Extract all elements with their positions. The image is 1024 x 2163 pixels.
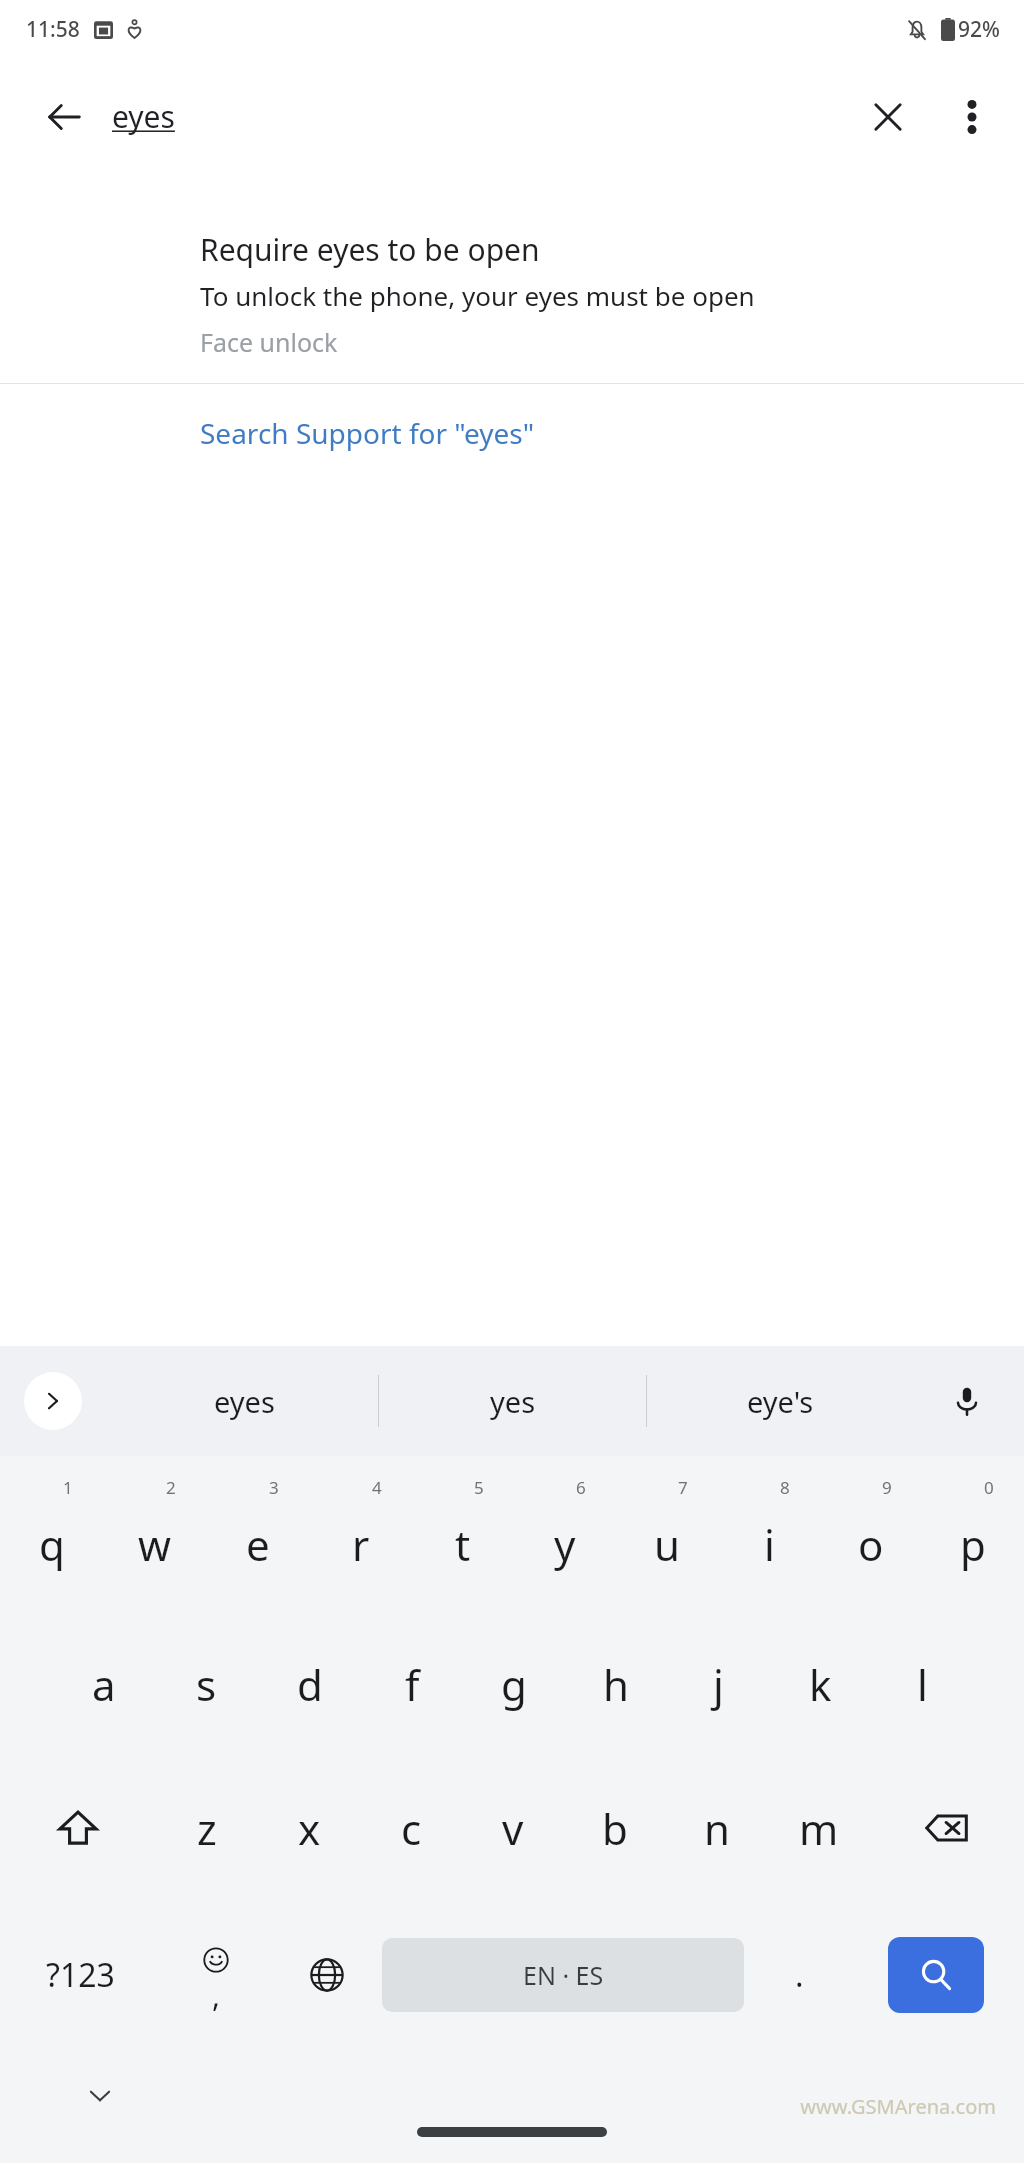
staticText: d xyxy=(297,1656,323,1713)
staticText: o xyxy=(858,1516,884,1573)
staticText: p xyxy=(960,1516,986,1573)
staticText: 92% xyxy=(958,15,1000,44)
staticText: 8 xyxy=(780,1476,790,1499)
staticText: m xyxy=(799,1800,839,1857)
button[interactable]: eyes xyxy=(110,1346,378,1456)
button[interactable]: yes xyxy=(379,1346,646,1456)
button[interactable]: 7 xyxy=(616,1468,718,1612)
staticText: 9 xyxy=(882,1476,892,1499)
staticText: c xyxy=(401,1800,422,1857)
button[interactable]: ?123 xyxy=(0,1900,160,2050)
staticText: e xyxy=(246,1516,270,1573)
staticText: To unlock the phone, your eyes must be o… xyxy=(200,278,755,313)
staticText: s xyxy=(196,1656,217,1713)
staticText: z xyxy=(197,1800,217,1857)
button[interactable]: eye's xyxy=(647,1346,914,1456)
button[interactable]: k xyxy=(769,1612,871,1756)
button[interactable]: x xyxy=(258,1756,360,1900)
staticText: j xyxy=(713,1656,724,1713)
button[interactable]: h xyxy=(565,1612,667,1756)
staticText: g xyxy=(501,1656,527,1713)
staticText: , xyxy=(212,1975,221,2016)
staticText: Search Support for "eyes" xyxy=(200,414,535,452)
button[interactable]: 3 xyxy=(206,1468,309,1612)
button[interactable]: Hide keyboard xyxy=(78,2074,122,2118)
staticText: n xyxy=(704,1800,730,1857)
staticText: 1 xyxy=(63,1476,73,1499)
staticText: 4 xyxy=(372,1476,382,1499)
button[interactable]: b xyxy=(564,1756,666,1900)
staticText: i xyxy=(764,1516,775,1573)
staticText: Require eyes to be open xyxy=(200,229,540,270)
button[interactable]: j xyxy=(667,1612,769,1756)
button[interactable]: n xyxy=(666,1756,768,1900)
staticText: x xyxy=(298,1800,321,1857)
staticText: 5 xyxy=(474,1476,484,1499)
staticText: y xyxy=(554,1516,576,1573)
staticText: 7 xyxy=(678,1476,688,1499)
button[interactable]: c xyxy=(360,1756,462,1900)
button[interactable]: Shift xyxy=(0,1756,155,1900)
button[interactable]: EN · ES xyxy=(382,1938,744,2012)
staticText: . xyxy=(795,1953,804,1997)
button[interactable]: g xyxy=(463,1612,565,1756)
staticText: www.GSMArena.com xyxy=(800,2093,996,2120)
button[interactable]: More options xyxy=(936,69,1008,165)
staticText: a xyxy=(92,1656,116,1713)
staticText: yes xyxy=(490,1382,536,1421)
staticText: 0 xyxy=(984,1476,994,1499)
button[interactable]: Voice input xyxy=(932,1366,1002,1436)
button[interactable]: 2 xyxy=(103,1468,206,1612)
staticText: w xyxy=(138,1516,172,1573)
button[interactable]: 8 xyxy=(718,1468,820,1612)
button[interactable]: Clear xyxy=(840,69,936,165)
button[interactable]: Require eyes to be open xyxy=(0,229,1024,359)
staticText: u xyxy=(654,1516,680,1573)
staticText: q xyxy=(39,1516,65,1573)
staticText: b xyxy=(602,1800,628,1857)
staticText: eye's xyxy=(747,1382,814,1421)
staticText: eyes xyxy=(214,1382,275,1421)
staticText: 6 xyxy=(576,1476,586,1499)
button[interactable]: Change language xyxy=(271,1900,382,2050)
staticText: r xyxy=(352,1516,370,1573)
staticText: l xyxy=(917,1656,928,1713)
staticText: k xyxy=(809,1656,832,1713)
button[interactable]: . xyxy=(744,1900,855,2050)
button[interactable]: 9 xyxy=(820,1468,922,1612)
button[interactable]: z xyxy=(155,1756,258,1900)
button[interactable]: f xyxy=(361,1612,463,1756)
staticText: 2 xyxy=(166,1476,176,1499)
button[interactable]: Back xyxy=(16,69,112,165)
staticText: EN · ES xyxy=(523,1958,604,1992)
button[interactable]: l xyxy=(871,1612,973,1756)
button[interactable]: 5 xyxy=(412,1468,514,1612)
staticText: h xyxy=(603,1656,629,1713)
button[interactable]: a xyxy=(52,1612,155,1756)
button[interactable]: 0 xyxy=(922,1468,1024,1612)
staticText: t xyxy=(455,1516,471,1573)
staticText: v xyxy=(502,1800,524,1857)
button[interactable]: More suggestions xyxy=(24,1372,82,1430)
staticText: 3 xyxy=(269,1476,279,1499)
staticText: eyes xyxy=(112,96,175,137)
staticText: f xyxy=(405,1656,420,1713)
button[interactable]: s xyxy=(155,1612,258,1756)
button[interactable]: 1 xyxy=(0,1468,103,1612)
staticText: 11:58 xyxy=(26,15,80,44)
button[interactable]: 6 xyxy=(514,1468,616,1612)
staticText: ?123 xyxy=(46,1953,115,1997)
button[interactable]: v xyxy=(462,1756,564,1900)
button[interactable]: Emoji xyxy=(160,1900,271,2050)
button[interactable]: Backspace xyxy=(870,1756,1024,1900)
staticText: Face unlock xyxy=(200,325,338,359)
button[interactable]: m xyxy=(768,1756,870,1900)
button[interactable]: 4 xyxy=(309,1468,412,1612)
button[interactable]: Search Support for "eyes" xyxy=(0,414,1024,452)
button[interactable]: d xyxy=(258,1612,361,1756)
button[interactable]: Search xyxy=(888,1937,984,2013)
